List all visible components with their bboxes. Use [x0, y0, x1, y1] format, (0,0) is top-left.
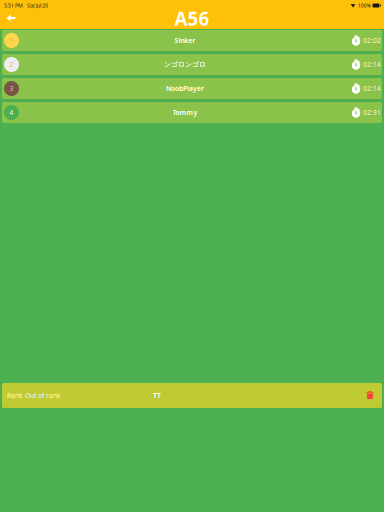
button[interactable]: 1: [2, 30, 382, 51]
staticText: Tommy: [172, 108, 197, 117]
staticText: A56: [174, 6, 209, 31]
button[interactable]: 2: [2, 54, 382, 75]
staticText: Sat Jul 20: [27, 2, 48, 9]
staticText: Rank Out of rank: [7, 391, 61, 400]
staticText: NoobPlayer: [166, 84, 204, 93]
staticText: 02:14: [363, 84, 381, 93]
staticText: ンゴロンゴロ: [164, 60, 206, 69]
staticText: 2: [9, 60, 13, 69]
staticText: Sinker: [174, 36, 195, 45]
staticText: 02:02: [363, 36, 381, 45]
staticText: 4: [9, 108, 13, 117]
button[interactable]: 3: [2, 78, 382, 99]
button[interactable]: 4: [2, 102, 382, 123]
staticText: 02:14: [363, 60, 381, 69]
button[interactable]: Delete: [362, 385, 378, 405]
staticText: 5:51 PM: [4, 2, 23, 9]
staticText: 1: [9, 36, 13, 45]
button[interactable]: Back: [0, 11, 22, 29]
staticText: 100%: [357, 2, 370, 9]
staticText: 3: [9, 84, 13, 93]
staticText: 02:31: [363, 108, 381, 117]
staticText: TT: [153, 391, 161, 400]
